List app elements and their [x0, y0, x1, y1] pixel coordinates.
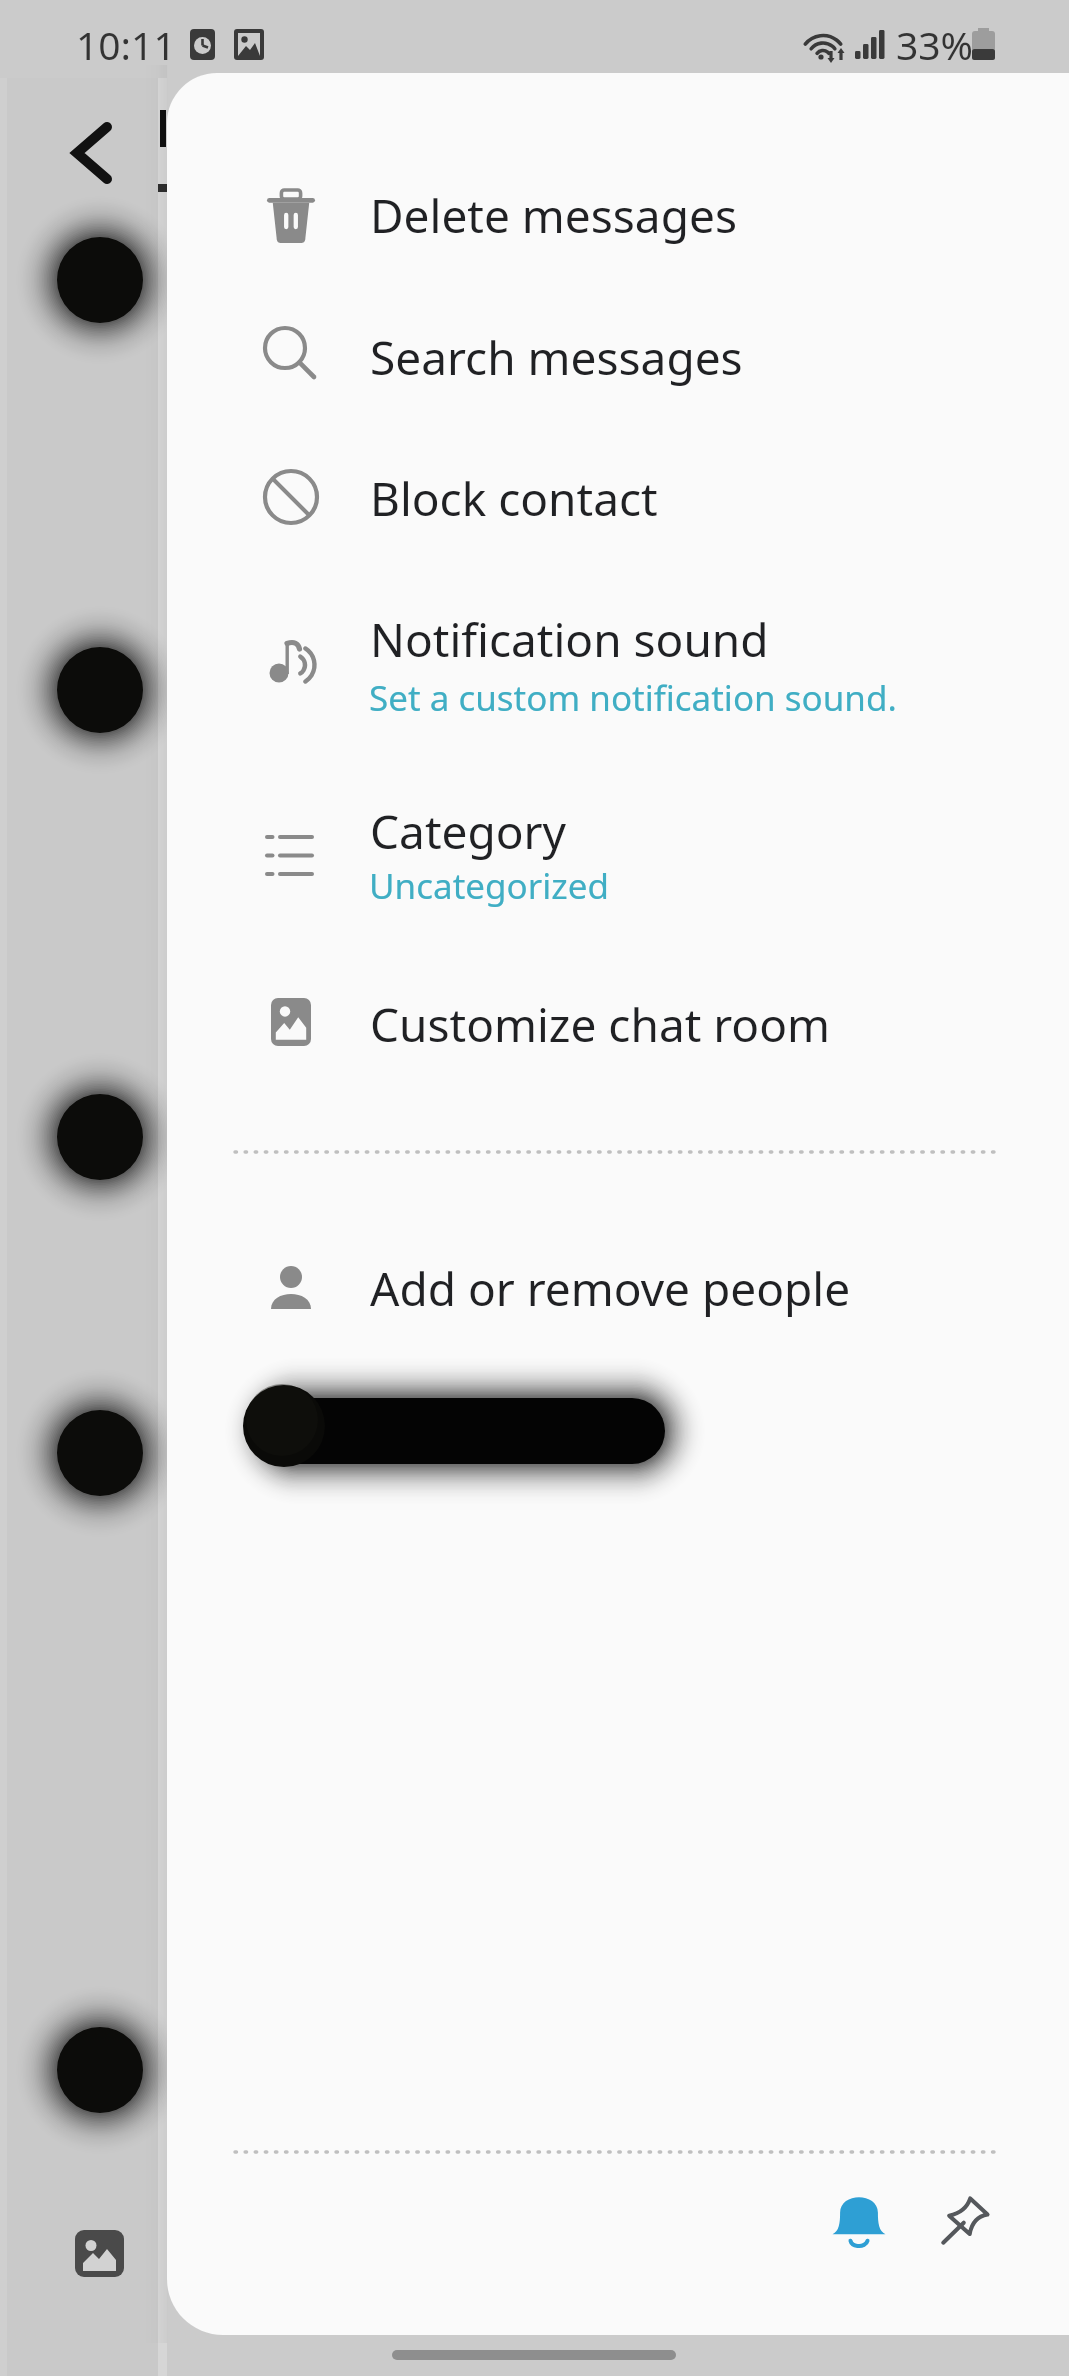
button[interactable] [167, 160, 1069, 302]
staticText: Uncategorized [369, 862, 609, 910]
button[interactable] [167, 969, 1069, 1111]
button[interactable] [167, 1233, 1069, 1375]
button[interactable]: Navigate up [42, 96, 154, 208]
button[interactable] [167, 584, 1069, 780]
staticText: Set a custom notification sound. [369, 674, 897, 722]
staticText: Add or remove people [370, 1257, 851, 1320]
button[interactable] [167, 302, 1069, 444]
staticText: 33% [896, 18, 974, 71]
staticText: Category [370, 800, 567, 863]
staticText: Block contact [370, 467, 658, 530]
staticText: Search messages [370, 326, 743, 389]
button[interactable]: Notification settings [807, 2166, 911, 2270]
staticText: 10:11 [76, 18, 176, 71]
button[interactable] [167, 443, 1069, 585]
button[interactable]: Pin conversation [915, 2168, 1019, 2272]
staticText: Notification sound [370, 608, 769, 671]
staticText: Delete messages [370, 184, 737, 247]
staticText: Customize chat room [370, 993, 831, 1056]
button[interactable] [167, 776, 1069, 972]
